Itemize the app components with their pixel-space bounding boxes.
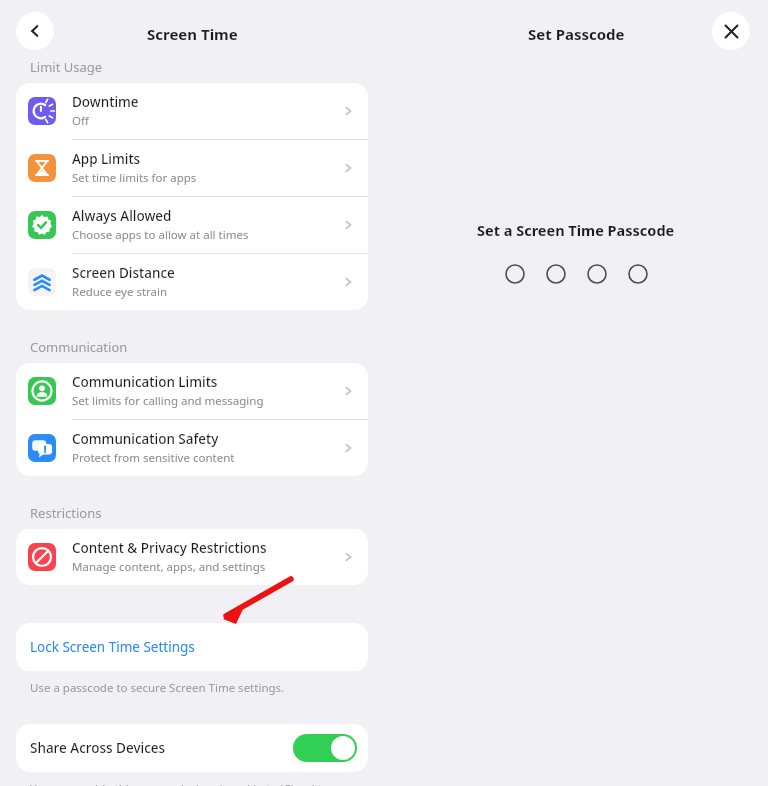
staticText: Screen Time xyxy=(147,24,238,44)
staticText: App Limits xyxy=(72,150,141,168)
staticText: Communication Limits xyxy=(72,373,218,391)
staticText: Manage content, apps, and settings xyxy=(72,559,266,575)
button[interactable]: Lock Screen Time Settings xyxy=(16,623,368,671)
button[interactable]: Downtime xyxy=(16,83,368,140)
staticText: Content & Privacy Restrictions xyxy=(72,539,267,557)
button[interactable]: Close xyxy=(712,12,750,50)
staticText: Set a Screen Time Passcode xyxy=(477,220,675,240)
staticText: Lock Screen Time Settings xyxy=(30,638,195,656)
button[interactable]: Communication Safety xyxy=(16,420,368,476)
button[interactable]: Share Across Devices xyxy=(16,724,368,772)
staticText: Reduce eye strain xyxy=(72,284,168,300)
button[interactable]: Always Allowed xyxy=(16,197,368,254)
staticText: Communication xyxy=(30,338,128,356)
staticText: Downtime xyxy=(72,93,139,111)
staticText: Off xyxy=(72,113,89,129)
button[interactable]: Content & Privacy Restrictions xyxy=(16,529,368,585)
staticText: Use a passcode to secure Screen Time set… xyxy=(30,680,285,696)
staticText: Always Allowed xyxy=(72,207,172,225)
staticText: Choose apps to allow at all times xyxy=(72,227,249,243)
button[interactable]: Screen Distance xyxy=(16,254,368,310)
button[interactable]: Back xyxy=(16,12,54,50)
staticText: You can enable this on any device signed… xyxy=(30,781,329,786)
staticText: Set limits for calling and messaging xyxy=(72,393,264,409)
button[interactable]: Communication Limits xyxy=(16,363,368,420)
button[interactable]: Share Across Devices toggle xyxy=(293,734,357,762)
staticText: Share Across Devices xyxy=(30,739,293,757)
staticText: Screen Distance xyxy=(72,264,175,282)
staticText: Restrictions xyxy=(30,504,102,522)
staticText: Limit Usage xyxy=(30,58,103,76)
staticText: Protect from sensitive content xyxy=(72,450,235,466)
staticText: Set Passcode xyxy=(528,24,625,44)
staticText: Set time limits for apps xyxy=(72,170,197,186)
button[interactable]: App Limits xyxy=(16,140,368,197)
staticText: Communication Safety xyxy=(72,430,219,448)
